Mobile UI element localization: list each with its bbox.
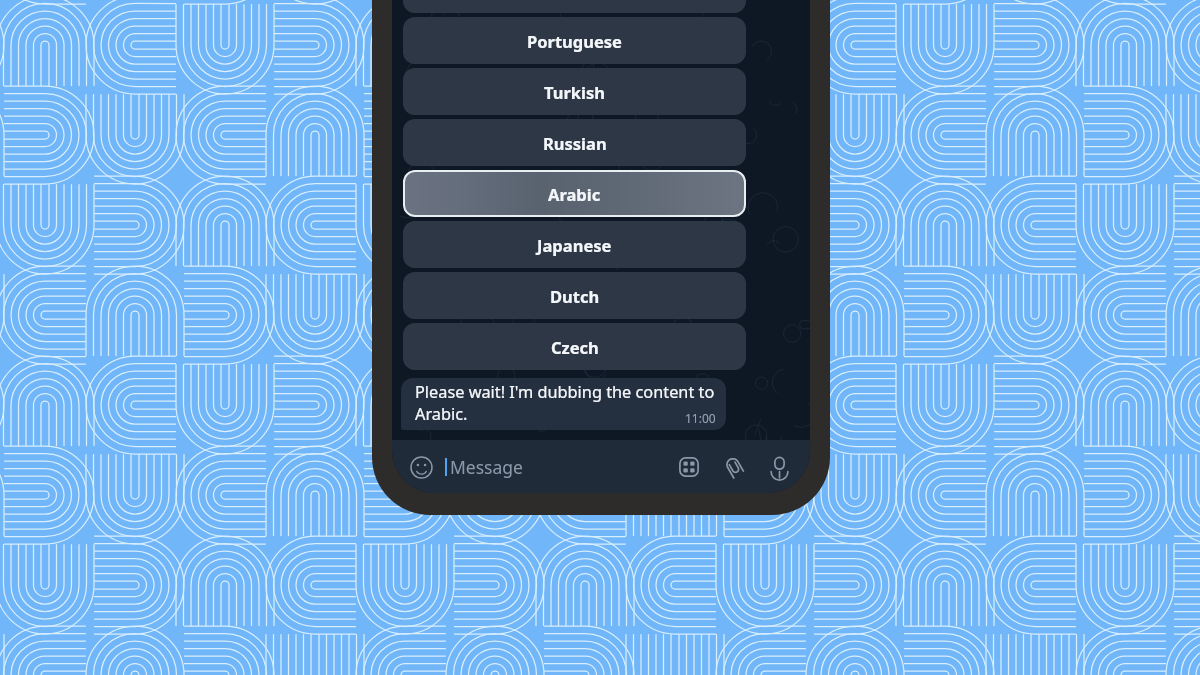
button[interactable]: Italian [403, 0, 746, 13]
staticText: Dutch [550, 285, 600, 307]
staticText: Please wait! I'm dubbing the content to … [415, 381, 715, 425]
button[interactable]: Arabic [403, 170, 746, 217]
button[interactable]: Portuguese [403, 17, 746, 64]
staticText: Japanese [537, 234, 612, 256]
button[interactable]: Attach [721, 454, 747, 480]
staticText: Arabic [548, 183, 601, 205]
staticText: Czech [551, 336, 599, 358]
button[interactable]: Keyboard [676, 454, 702, 480]
staticText: Portuguese [527, 30, 622, 52]
button[interactable]: Czech [403, 323, 746, 370]
button[interactable]: Emoji [408, 454, 434, 480]
button[interactable]: Voice message [766, 454, 792, 480]
staticText: 11:00 [685, 410, 716, 426]
button[interactable]: Japanese [403, 221, 746, 268]
staticText: Message [450, 455, 523, 479]
staticText: Turkish [544, 81, 605, 103]
staticText: Russian [543, 132, 607, 154]
button[interactable]: Russian [403, 119, 746, 166]
button[interactable]: Dutch [403, 272, 746, 319]
button[interactable]: Turkish [403, 68, 746, 115]
